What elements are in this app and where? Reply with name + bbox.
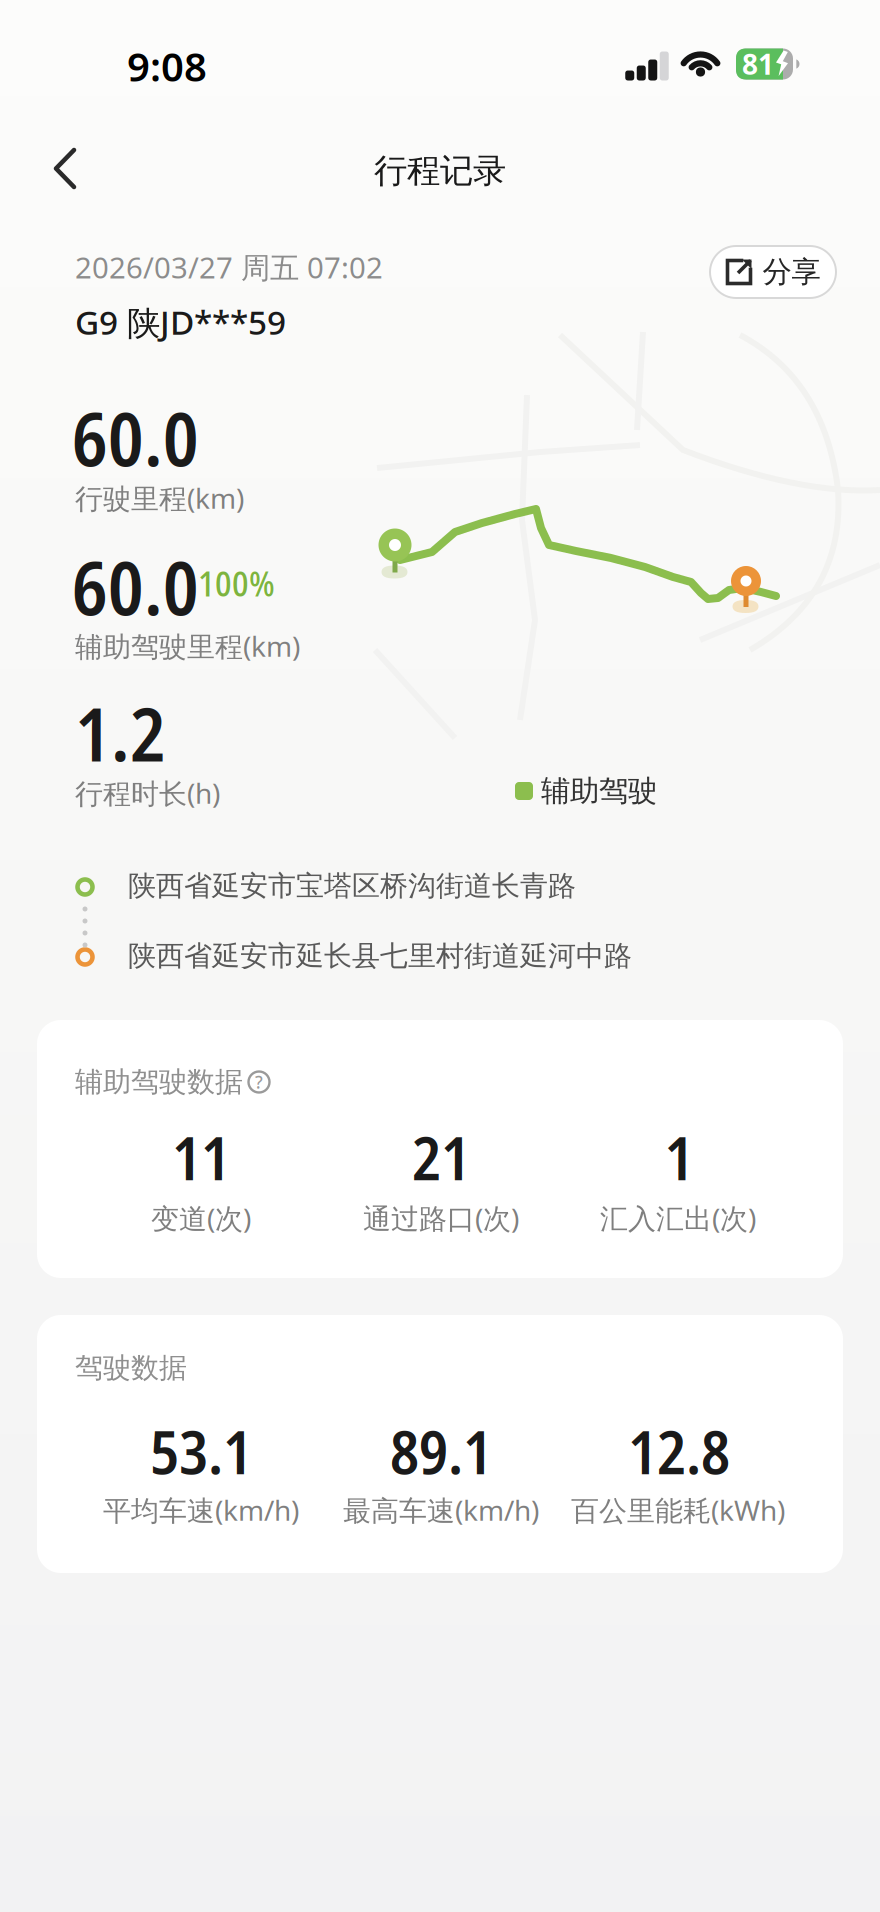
staticText: 2026/03/27 周五 07:02 — [75, 247, 383, 286]
button[interactable]: Back — [34, 139, 94, 199]
staticText: 53.1 — [150, 1410, 252, 1492]
staticText: 变道(次) — [151, 1199, 251, 1237]
staticText: G9 陕JD***59 — [75, 300, 286, 344]
button[interactable]: 分享 — [709, 245, 837, 299]
staticText: 9:08 — [127, 39, 207, 92]
staticText: 辅助驾驶数据 — [75, 1065, 243, 1099]
staticText: 辅助驾驶 — [541, 773, 657, 809]
staticText: 分享 — [762, 254, 820, 290]
staticText: 最高车速(km/h) — [343, 1491, 539, 1529]
staticText: 陕西省延安市延长县七里村街道延河中路 — [128, 939, 632, 973]
staticText: 汇入汇出(次) — [600, 1199, 756, 1237]
staticText: 11 — [172, 1116, 230, 1198]
button[interactable]: 辅助驾驶数据说明 — [246, 1069, 272, 1095]
staticText: 行程记录 — [374, 150, 506, 191]
staticText: 辅助驾驶里程(km) — [75, 627, 300, 665]
staticText: 89.1 — [390, 1410, 492, 1492]
staticText: 60.0 — [72, 537, 199, 637]
staticText: 60.0 — [72, 388, 199, 488]
staticText: 百公里能耗(kWh) — [571, 1491, 785, 1529]
staticText: 行程时长(h) — [75, 774, 220, 812]
staticText: 81 — [742, 45, 774, 83]
staticText: 100% — [198, 559, 275, 607]
staticText: ? — [255, 1070, 263, 1093]
staticText: 12.8 — [628, 1410, 730, 1492]
staticText: 1 — [664, 1116, 693, 1198]
staticText: 平均车速(km/h) — [103, 1491, 299, 1529]
staticText: 陕西省延安市宝塔区桥沟街道长青路 — [128, 869, 576, 903]
staticText: 21 — [412, 1116, 470, 1198]
staticText: 行驶里程(km) — [75, 479, 244, 517]
staticText: 通过路口(次) — [363, 1199, 519, 1237]
staticText: 1.2 — [75, 683, 166, 783]
staticText: 驾驶数据 — [75, 1351, 187, 1385]
